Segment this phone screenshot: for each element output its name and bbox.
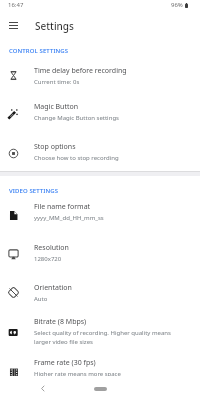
button[interactable]: Resolution — [0, 243, 200, 263]
staticText: Change Magic Button settings — [34, 114, 119, 122]
staticText: Settings — [35, 19, 74, 33]
staticText: 1280x720 — [34, 255, 62, 263]
button[interactable]: Open navigation drawer — [4, 15, 24, 35]
button[interactable]: Orientation — [0, 283, 200, 303]
button[interactable]: Time delay before recording — [0, 66, 200, 86]
staticText: File name format — [34, 202, 91, 212]
button[interactable]: Back — [31, 377, 53, 399]
staticText: yyyy_MM_dd_HH_mm_ss — [34, 214, 104, 222]
staticText: Stop options — [34, 142, 76, 152]
staticText: 96% — [171, 1, 183, 9]
staticText: Current time: 0s — [34, 78, 80, 86]
staticText: Orientation — [34, 283, 72, 293]
staticText: CONTROL SETTINGS — [9, 47, 69, 55]
staticText: Bitrate (8 Mbps) — [34, 317, 87, 327]
button[interactable]: File name format — [0, 202, 200, 222]
button[interactable]: Magic Button — [0, 102, 200, 122]
button[interactable]: Home — [94, 387, 107, 391]
staticText: Choose how to stop recording — [34, 154, 119, 162]
staticText: 16:47 — [8, 1, 24, 9]
staticText: Resolution — [34, 243, 69, 253]
staticText: VIDEO SETTINGS — [9, 187, 59, 195]
staticText: Time delay before recording — [34, 66, 127, 76]
staticText: Auto — [34, 295, 48, 303]
button[interactable]: Bitrate (8 Mbps) — [0, 317, 200, 346]
staticText: Frame rate (30 fps) — [34, 358, 96, 368]
staticText: Higher rate means more space — [34, 370, 121, 378]
staticText: Select quality of recording. Higher qual… — [34, 329, 174, 346]
button[interactable]: Stop options — [0, 142, 200, 162]
button[interactable]: Frame rate (30 fps) — [0, 358, 200, 378]
staticText: Magic Button — [34, 102, 79, 112]
